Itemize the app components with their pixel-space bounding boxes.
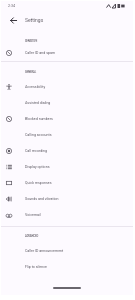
- staticText: ADVANCED: [25, 234, 39, 237]
- button[interactable]: Accessibility: [1, 79, 133, 95]
- button[interactable]: Quick responses: [1, 175, 133, 191]
- staticText: Sounds and vibration: [25, 197, 59, 201]
- staticText: Caller ID and spam: [25, 51, 56, 55]
- staticText: Assisted dialing: [25, 101, 51, 105]
- button[interactable]: Assisted dialing: [1, 95, 133, 111]
- staticText: Settings: [25, 17, 44, 23]
- button[interactable]: Calling accounts: [1, 127, 133, 143]
- button[interactable]: Blocked numbers: [1, 111, 133, 127]
- staticText: 2:34: [8, 4, 15, 8]
- staticText: Calling accounts: [25, 133, 52, 137]
- staticText: Flip to silence: [25, 265, 48, 269]
- button[interactable]: Display options: [1, 159, 133, 175]
- staticText: Blocked numbers: [25, 117, 53, 121]
- staticText: Accessibility: [25, 85, 46, 89]
- button[interactable]: Caller ID announcement: [1, 243, 133, 259]
- button[interactable]: Voicemail: [1, 207, 133, 223]
- staticText: Call recording: [25, 149, 48, 153]
- staticText: Quick responses: [25, 181, 52, 185]
- staticText: SENSITIVE: [25, 39, 38, 42]
- staticText: Caller ID announcement: [25, 249, 64, 253]
- staticText: GENERAL: [25, 70, 37, 73]
- staticText: Display options: [25, 165, 50, 169]
- button[interactable]: Back: [1, 11, 25, 29]
- button[interactable]: Flip to silence: [1, 259, 133, 275]
- button[interactable]: Caller ID and spam: [1, 45, 133, 61]
- button[interactable]: Sounds and vibration: [1, 191, 133, 207]
- staticText: Voicemail: [25, 213, 41, 217]
- button[interactable]: Call recording: [1, 143, 133, 159]
